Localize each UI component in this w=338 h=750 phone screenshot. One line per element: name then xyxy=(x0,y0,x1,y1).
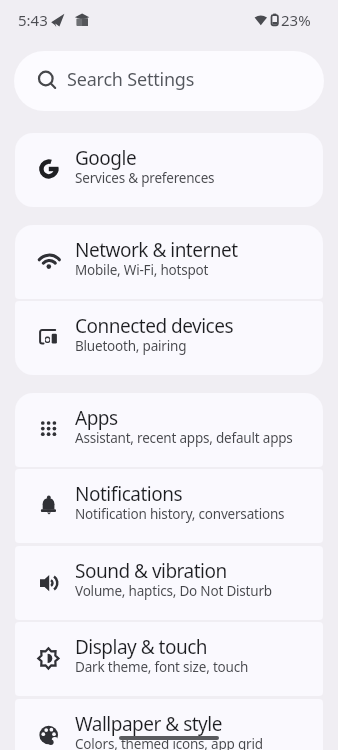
button[interactable]: Network & internet xyxy=(15,225,323,299)
staticText: Mobile, Wi-Fi, hotspot xyxy=(75,261,209,279)
staticText: Search Settings xyxy=(67,67,195,92)
button[interactable]: Wallpaper & style xyxy=(15,699,323,750)
button[interactable]: Display & touch xyxy=(15,622,323,696)
staticText: Notifications xyxy=(75,481,183,507)
staticText: Display & touch xyxy=(75,634,208,660)
staticText: Wallpaper & style xyxy=(75,711,222,737)
staticText: Connected devices xyxy=(75,313,234,339)
staticText: Volume, haptics, Do Not Disturb xyxy=(75,582,272,600)
staticText: 5:43 xyxy=(18,10,48,30)
button[interactable]: Google xyxy=(15,133,323,207)
staticText: Apps xyxy=(75,405,118,431)
staticText: 23% xyxy=(281,10,311,30)
staticText: Assistant, recent apps, default apps xyxy=(75,429,293,447)
button[interactable]: Sound & vibration xyxy=(15,546,323,620)
staticText: Colors, themed icons, app grid xyxy=(75,735,263,750)
button[interactable]: Notifications xyxy=(15,469,323,543)
button[interactable]: Search Settings xyxy=(14,51,324,111)
button[interactable]: Connected devices xyxy=(15,301,323,375)
staticText: Google xyxy=(75,145,137,171)
staticText: Sound & vibration xyxy=(75,558,227,584)
button[interactable]: Apps xyxy=(15,393,323,467)
staticText: Network & internet xyxy=(75,237,238,263)
staticText: Dark theme, font size, touch xyxy=(75,658,249,676)
staticText: Notification history, conversations xyxy=(75,505,285,523)
staticText: Bluetooth, pairing xyxy=(75,337,187,355)
staticText: Services & preferences xyxy=(75,169,215,187)
